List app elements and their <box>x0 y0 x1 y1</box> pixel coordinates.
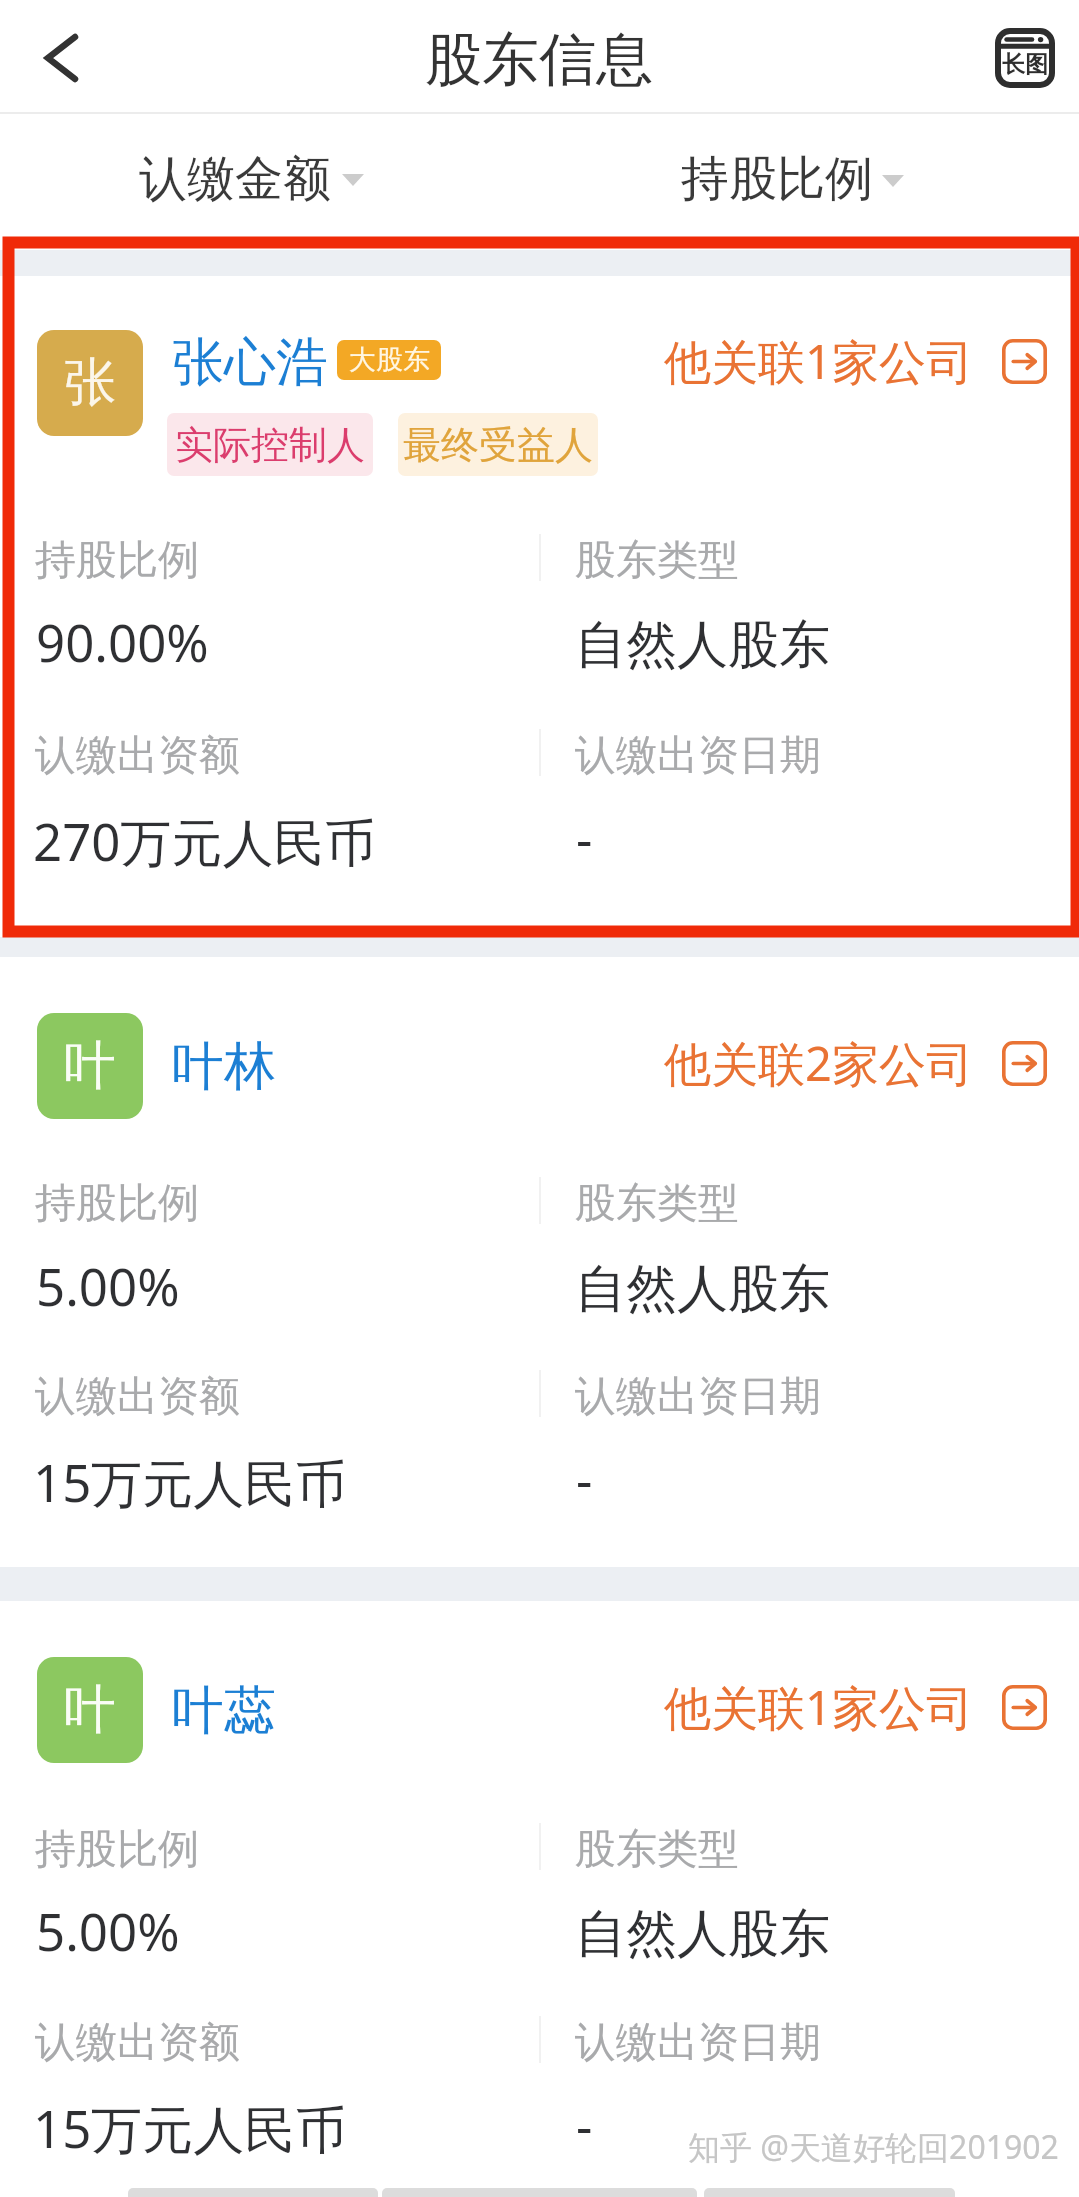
other: 查看关联公司 <box>1002 339 1047 384</box>
staticText: 认缴出资日期 <box>575 1371 821 1423</box>
button[interactable]: 他关联2家公司 <box>664 1031 1047 1095</box>
staticText: 股东类型 <box>575 1824 739 1876</box>
staticText: 自然人股东 <box>575 1902 830 1966</box>
other: 查看关联公司 <box>1002 1685 1047 1730</box>
button[interactable]: 他关联1家公司 <box>664 1675 1047 1739</box>
button[interactable]: 叶蕊 <box>0 0 104 66</box>
staticText: 叶 <box>64 1033 116 1099</box>
staticText: 5.00% <box>36 1896 180 1965</box>
staticText: 认缴出资额 <box>35 1371 240 1423</box>
staticText: - <box>576 803 593 872</box>
staticText: 自然人股东 <box>575 613 830 677</box>
staticText: 持股比例 <box>35 535 199 587</box>
staticText: 股东类型 <box>575 535 739 587</box>
button[interactable] <box>0 1601 1079 2197</box>
staticText: 股东信息 <box>425 24 653 96</box>
staticText: 叶 <box>64 1677 116 1743</box>
button[interactable]: 叶林 <box>0 0 104 66</box>
staticText: 股东类型 <box>575 1178 739 1230</box>
staticText: 认缴出资额 <box>35 730 240 782</box>
staticText: 张 <box>64 350 116 416</box>
staticText: 认缴金额 <box>139 149 331 209</box>
staticText: 持股比例 <box>35 1178 199 1230</box>
staticText: 长图 <box>1002 50 1048 79</box>
staticText: 他关联2家公司 <box>664 1031 973 1095</box>
other: 查看关联公司 <box>1002 1041 1047 1086</box>
button[interactable]: 叶 <box>37 1013 143 1119</box>
staticText: 他关联1家公司 <box>664 1675 973 1739</box>
staticText: 持股比例 <box>681 149 873 209</box>
staticText: 认缴出资日期 <box>575 2017 821 2069</box>
staticText: 5.00% <box>36 1251 180 1320</box>
staticText: - <box>576 2090 593 2159</box>
button[interactable]: 张 <box>37 330 143 436</box>
button[interactable]: 他关联1家公司 <box>664 329 1047 393</box>
staticText: 大股东 <box>349 343 430 377</box>
staticText: 15万元人民币 <box>33 1447 347 1517</box>
button[interactable]: 长图 <box>995 28 1055 88</box>
staticText: 15万元人民币 <box>33 2093 347 2163</box>
staticText: 知乎 @天道好轮回201902 <box>688 2125 1059 2169</box>
button[interactable] <box>0 276 1079 937</box>
staticText: 最终受益人 <box>403 421 593 469</box>
button[interactable]: 张心浩 <box>0 0 156 66</box>
staticText: 270万元人民币 <box>33 806 376 876</box>
staticText: 自然人股东 <box>575 1257 830 1321</box>
button[interactable]: 最终受益人 <box>398 413 598 476</box>
staticText: 90.00% <box>36 607 209 676</box>
button[interactable]: 实际控制人 <box>167 413 373 476</box>
staticText: 持股比例 <box>35 1824 199 1876</box>
staticText: 实际控制人 <box>175 421 365 469</box>
button[interactable]: 叶 <box>37 1657 143 1763</box>
button[interactable]: Back <box>22 22 92 92</box>
staticText: 认缴出资额 <box>35 2017 240 2069</box>
staticText: - <box>576 1444 593 1513</box>
button[interactable] <box>0 957 1079 1567</box>
staticText: 认缴出资日期 <box>575 730 821 782</box>
staticText: 他关联1家公司 <box>664 329 973 393</box>
button[interactable]: 大股东 <box>337 340 441 380</box>
